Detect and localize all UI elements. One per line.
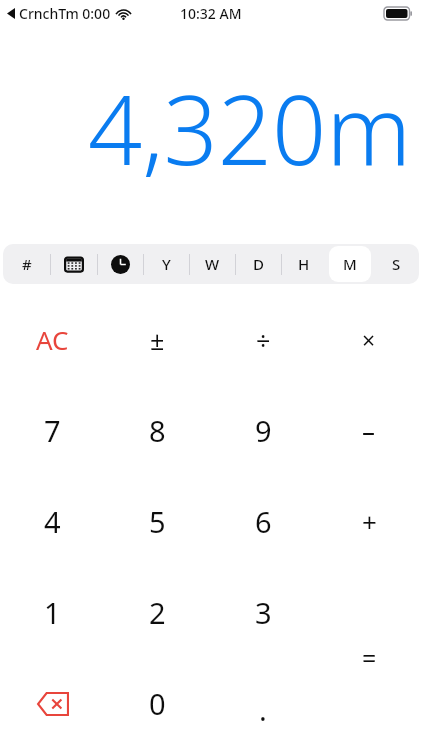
button[interactable]: 7 <box>0 385 105 476</box>
button[interactable]: × <box>316 294 422 385</box>
staticText: D <box>253 254 264 274</box>
staticText: S <box>392 254 401 274</box>
button[interactable]: D <box>235 244 281 284</box>
staticText: AC <box>36 322 69 357</box>
staticText: ÷ <box>256 323 271 357</box>
button[interactable]: 3 <box>210 567 316 658</box>
staticText: 5 <box>149 502 166 541</box>
button[interactable]: ± <box>105 294 210 385</box>
button[interactable]: 1 <box>0 567 105 658</box>
button[interactable]: – <box>316 385 422 476</box>
staticText: + <box>362 504 377 539</box>
button[interactable]: Calendar <box>50 244 97 284</box>
button[interactable]: 8 <box>105 385 210 476</box>
staticText: 7 <box>44 411 61 450</box>
button[interactable]: 4 <box>0 476 105 567</box>
staticText: W <box>205 254 220 274</box>
button[interactable]: # <box>3 244 50 284</box>
button[interactable]: AC <box>0 294 105 385</box>
button[interactable]: M <box>327 244 373 284</box>
button[interactable]: ÷ <box>210 294 316 385</box>
staticText: 2 <box>149 593 166 632</box>
staticText: – <box>362 413 376 448</box>
staticText: 4 <box>44 502 61 541</box>
button[interactable]: 5 <box>105 476 210 567</box>
staticText: 9 <box>255 411 272 450</box>
staticText: ± <box>150 323 165 357</box>
button[interactable]: Y <box>143 244 189 284</box>
button[interactable]: Clock <box>97 244 143 284</box>
staticText: 1 <box>44 593 61 632</box>
staticText: = <box>362 641 377 675</box>
button[interactable]: Delete <box>0 658 105 749</box>
staticText: 3 <box>255 593 272 632</box>
staticText: 6 <box>255 502 272 541</box>
staticText: CrnchTm 0:00 <box>19 4 111 23</box>
staticText: 10:32 AM <box>180 4 242 23</box>
button[interactable]: = <box>316 567 422 658</box>
staticText: . <box>259 690 267 729</box>
button[interactable]: 2 <box>105 567 210 658</box>
staticText: 4,320m <box>88 63 412 192</box>
staticText: 8 <box>149 411 166 450</box>
button[interactable]: H <box>281 244 327 284</box>
staticText: # <box>22 254 32 274</box>
staticText: 0 <box>149 684 166 723</box>
button[interactable]: 9 <box>210 385 316 476</box>
button[interactable]: 0 <box>105 658 210 749</box>
button[interactable]: + <box>316 476 422 567</box>
button[interactable]: S <box>373 244 419 284</box>
button[interactable]: 6 <box>210 476 316 567</box>
button[interactable]: W <box>189 244 235 284</box>
staticText: H <box>298 254 310 274</box>
staticText: × <box>362 324 376 355</box>
staticText: Y <box>162 254 171 274</box>
staticText: M <box>343 254 357 274</box>
button[interactable]: . <box>210 658 316 749</box>
